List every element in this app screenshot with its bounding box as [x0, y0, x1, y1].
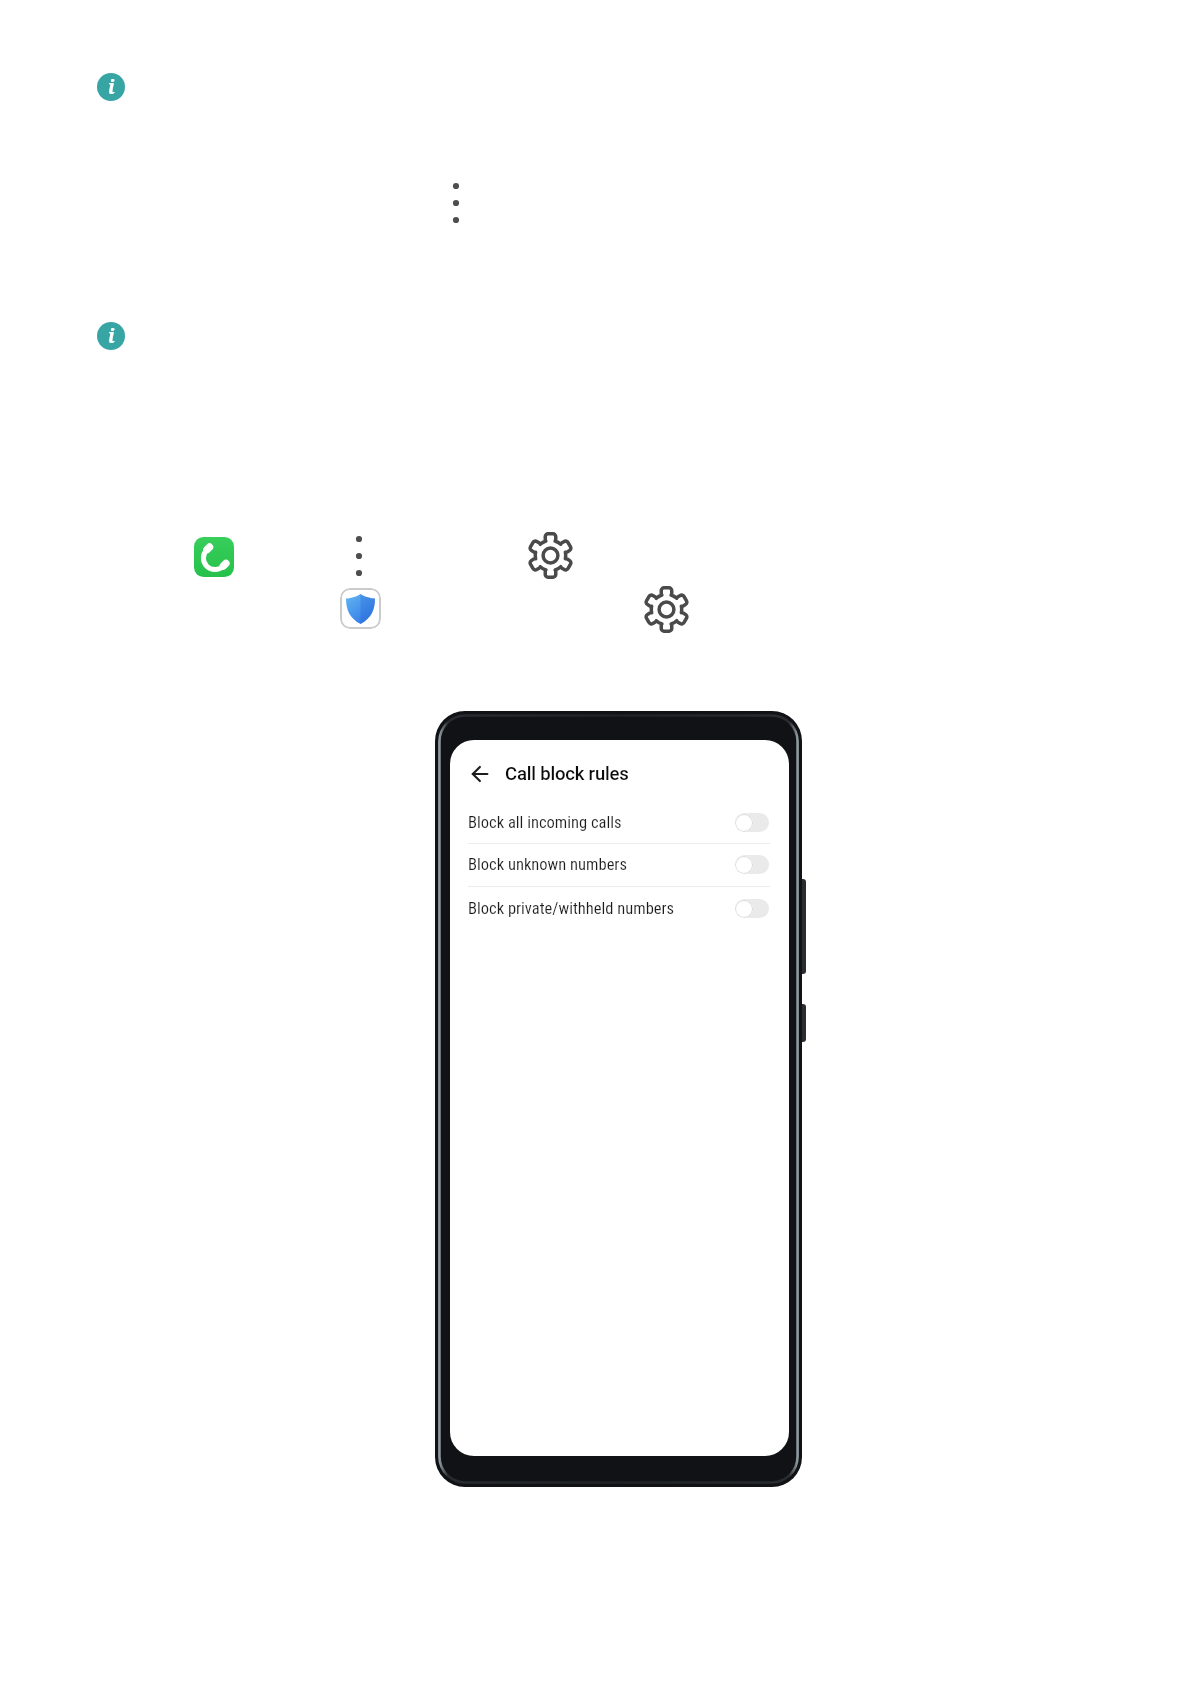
staticText: i [108, 323, 115, 349]
button[interactable] [472, 766, 488, 782]
button[interactable] [194, 537, 234, 577]
button[interactable] [735, 899, 769, 918]
button[interactable] [529, 534, 572, 577]
staticText: Block all incoming calls [468, 813, 622, 832]
staticText: Call block rules [505, 763, 629, 785]
button[interactable] [645, 588, 688, 631]
staticText: Block private/withheld numbers [468, 899, 675, 918]
button[interactable]: Block private/withheld numbers [450, 886, 789, 930]
staticText: Block unknown numbers [468, 855, 627, 874]
staticText: i [108, 74, 115, 100]
button[interactable] [735, 855, 769, 874]
button[interactable]: Block unknown numbers [450, 843, 789, 886]
button[interactable] [735, 813, 769, 832]
button[interactable]: Block all incoming calls [450, 801, 789, 844]
button[interactable] [340, 588, 381, 629]
